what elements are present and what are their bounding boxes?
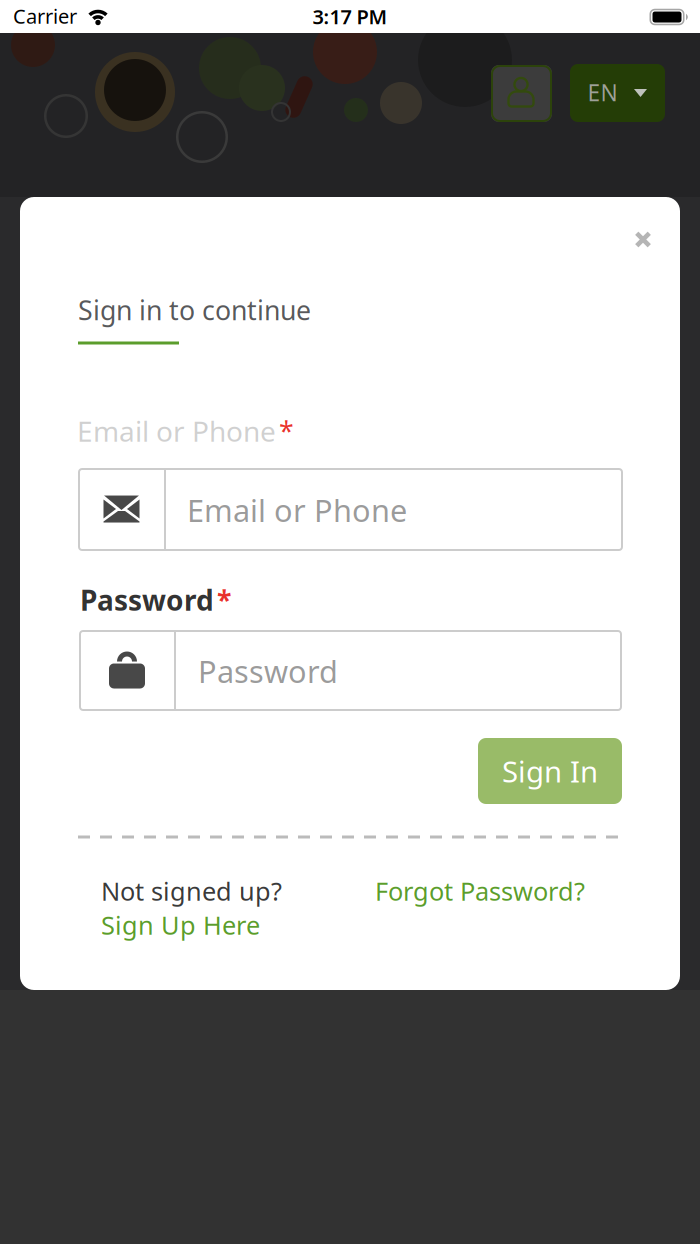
staticText: Password: [198, 651, 338, 691]
staticText: Email or Phone: [77, 412, 276, 450]
button[interactable]: Sign Up Here: [20, 197, 680, 990]
staticText: Not signed up?: [101, 874, 282, 908]
staticText: Sign in to continue: [78, 292, 311, 328]
staticText: Sign In: [502, 751, 598, 790]
staticText: EN: [587, 77, 617, 107]
button[interactable]: Forgot Password?: [20, 197, 680, 990]
button[interactable]: Account: [491, 65, 552, 122]
staticText: 3:17 PM: [312, 3, 387, 30]
button[interactable]: Close: [625, 221, 661, 257]
button[interactable]: Language: English: [570, 64, 665, 122]
staticText: Forgot Password?: [375, 874, 585, 908]
staticText: Email or Phone: [187, 490, 407, 530]
staticText: *: [279, 413, 294, 449]
staticText: Sign Up Here: [101, 908, 260, 942]
staticText: Password: [80, 581, 214, 619]
staticText: *: [217, 582, 231, 618]
button[interactable]: Sign In: [478, 738, 622, 804]
staticText: Carrier: [13, 3, 77, 29]
